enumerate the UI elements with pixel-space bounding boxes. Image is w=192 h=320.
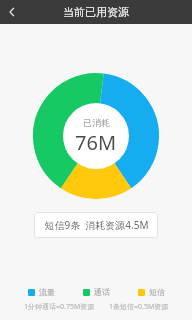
- staticText: 当前已用资源: [63, 5, 129, 19]
- staticText: 1分钟通话=0.75M资源: [24, 302, 95, 312]
- button[interactable]: 通话: [83, 287, 110, 297]
- staticText: 已消耗: [83, 117, 110, 128]
- staticText: 短信9条 消耗资源4.5M: [44, 218, 149, 232]
- staticText: 流量: [39, 287, 55, 297]
- button[interactable]: Back: [0, 0, 24, 24]
- staticText: 通话: [94, 287, 110, 297]
- staticText: 短信: [149, 287, 165, 297]
- button[interactable]: 流量: [28, 287, 55, 297]
- staticText: 76M: [75, 129, 117, 156]
- button[interactable]: 短信: [138, 287, 165, 297]
- staticText: 1条短信=0.5M资源: [109, 302, 169, 312]
- button[interactable]: 短信9条 消耗资源4.5M: [34, 212, 158, 238]
